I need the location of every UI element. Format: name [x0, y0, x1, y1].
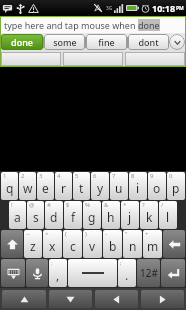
staticText: PM: [176, 5, 184, 12]
staticText: done: [138, 19, 160, 31]
staticText: a: [14, 209, 21, 225]
button[interactable]: ?: [140, 201, 158, 229]
staticText: fine: [98, 36, 115, 48]
button[interactable]: ^: [43, 230, 62, 258]
staticText: ,: [56, 267, 60, 283]
button[interactable]: More suggestions: [169, 34, 185, 50]
button[interactable]: 5: [73, 172, 90, 200]
staticText: 2: [21, 172, 25, 180]
staticText: type here and tap mouse when: [4, 19, 138, 31]
button[interactable]: 1: [1, 172, 18, 200]
staticText: 10:18: [152, 2, 176, 14]
button[interactable]: Shift: [1, 230, 23, 258]
staticText: #: [47, 201, 51, 209]
button[interactable]: *: [121, 201, 139, 229]
staticText: w: [23, 180, 33, 196]
staticText: ?: [142, 201, 145, 209]
staticText: j: [128, 209, 132, 225]
staticText: (: [65, 230, 67, 238]
staticText: c: [70, 238, 76, 254]
staticText: .: [125, 267, 129, 283]
button[interactable]: Enter: [161, 259, 185, 287]
button[interactable]: Right: [141, 290, 184, 308]
staticText: l: [166, 209, 170, 225]
staticText: ~: [26, 230, 30, 238]
button[interactable]: :: [49, 259, 67, 287]
button[interactable]: %: [83, 201, 101, 229]
staticText: *: [123, 201, 127, 209]
button[interactable]: 0: [167, 172, 185, 200]
staticText: 0: [169, 172, 173, 180]
button[interactable]: +: [143, 230, 162, 258]
staticText: :: [51, 259, 53, 267]
button[interactable]: 12#: [137, 259, 160, 287]
button[interactable]: [125, 52, 185, 66]
staticText: @: [29, 201, 35, 209]
staticText: z: [30, 238, 36, 254]
button[interactable]: ~: [24, 230, 42, 258]
staticText: -: [105, 230, 107, 238]
button[interactable]: (: [63, 230, 82, 258]
staticText: 12#: [140, 266, 158, 280]
staticText: h: [107, 209, 115, 225]
button[interactable]: /: [159, 201, 177, 229]
button[interactable]: 4: [55, 172, 72, 200]
button[interactable]: [1, 52, 61, 66]
staticText: 3G: [106, 5, 113, 12]
button[interactable]: 8: [129, 172, 147, 200]
staticText: !: [11, 201, 13, 209]
button[interactable]: some: [44, 34, 85, 50]
button[interactable]: ": [123, 230, 142, 258]
staticText: 7: [112, 172, 116, 180]
button[interactable]: 9: [148, 172, 166, 200]
button[interactable]: @: [27, 201, 44, 229]
button[interactable]: 3: [37, 172, 54, 200]
button[interactable]: dont: [128, 34, 169, 50]
staticText: some: [53, 36, 77, 48]
button[interactable]: Down: [49, 290, 92, 308]
staticText: ^: [45, 230, 49, 238]
staticText: o: [153, 180, 161, 196]
staticText: p: [172, 180, 180, 196]
button[interactable]: 6: [91, 172, 109, 200]
button[interactable]: done: [1, 34, 43, 50]
staticText: /: [161, 201, 164, 209]
staticText: b: [109, 238, 117, 254]
staticText: 6: [93, 172, 97, 180]
staticText: 8: [131, 172, 135, 180]
staticText: v: [89, 238, 96, 254]
button[interactable]: !: [9, 201, 26, 229]
button[interactable]: $: [64, 201, 82, 229]
staticText: ": [125, 230, 128, 238]
staticText: &: [104, 201, 109, 209]
staticText: f: [71, 209, 76, 225]
button[interactable]: Up: [2, 290, 46, 308]
button[interactable]: Keyboard settings: [1, 259, 25, 287]
button[interactable]: [63, 52, 123, 66]
button[interactable]: Left: [95, 290, 138, 308]
staticText: done: [11, 36, 33, 48]
button[interactable]: #: [45, 201, 63, 229]
button[interactable]: -: [103, 230, 122, 258]
button[interactable]: Backspace: [163, 230, 185, 258]
staticText: n: [129, 238, 137, 254]
staticText: m: [147, 238, 159, 254]
button[interactable]: fine: [86, 34, 127, 50]
staticText: s: [33, 209, 39, 225]
staticText: 1: [3, 172, 7, 180]
button[interactable]: Space: [68, 259, 117, 287]
staticText: r: [61, 180, 66, 196]
button[interactable]: Voice input: [26, 259, 48, 287]
button[interactable]: 2: [19, 172, 36, 200]
staticText: d: [50, 209, 58, 225]
button[interactable]: &: [102, 201, 120, 229]
staticText: q: [6, 180, 14, 196]
staticText: u: [115, 180, 123, 196]
staticText: dont: [138, 36, 159, 48]
button[interactable]: ;: [118, 259, 136, 287]
staticText: x: [49, 238, 56, 254]
staticText: ;: [120, 259, 122, 267]
button[interactable]: 7: [110, 172, 128, 200]
button[interactable]: ): [83, 230, 102, 258]
staticText: 4: [57, 172, 61, 180]
